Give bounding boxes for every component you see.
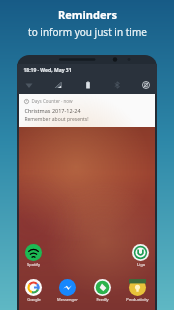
button[interactable]: Feedly (94, 279, 111, 302)
button[interactable]: Messenger (57, 279, 78, 302)
button[interactable]: Days Counter · now (19, 94, 155, 127)
button[interactable]: Spotify (25, 244, 42, 267)
button[interactable]: Auto rotate (140, 79, 151, 90)
staticText: Messenger (57, 297, 78, 302)
button[interactable]: Google (25, 279, 42, 302)
staticText: Liga (137, 262, 145, 267)
staticText: Christmas 2017-12-24 (24, 107, 81, 114)
staticText: Reminders (58, 7, 117, 22)
staticText: Productivity (126, 297, 149, 302)
button[interactable]: Productivity (126, 279, 149, 302)
button[interactable]: Battery (82, 79, 93, 90)
button[interactable]: Liga (132, 244, 149, 267)
button[interactable]: Bluetooth (111, 79, 122, 90)
staticText: Days Counter · now (31, 98, 73, 104)
staticText: Google (27, 297, 41, 302)
staticText: 18:19 · Wed, May 31 (23, 67, 72, 74)
staticText: Feedly (96, 297, 109, 302)
staticText: Spotify (27, 262, 40, 267)
button[interactable]: Mobile data (52, 79, 63, 90)
button[interactable]: Wi-Fi (23, 79, 34, 90)
staticText: to inform you just in time (28, 25, 147, 39)
staticText: Remember about presents! (24, 116, 89, 123)
